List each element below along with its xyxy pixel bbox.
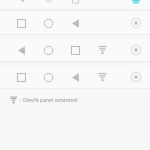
other: Not selected	[130, 71, 142, 83]
other: Recent apps	[69, 44, 82, 57]
other: Not selected	[130, 44, 142, 56]
button[interactable]: Recent apps	[0, 12, 150, 34]
other: Recent apps	[15, 71, 28, 84]
button[interactable]	[0, 0, 150, 9]
other: Back	[69, 71, 82, 84]
other: Back	[69, 17, 82, 30]
other: Home	[42, 17, 55, 30]
other: Home	[42, 44, 55, 57]
other: Not selected	[130, 17, 142, 29]
other: Open notification panel	[96, 44, 109, 57]
other: Home	[42, 71, 55, 84]
other: Recent apps	[15, 17, 28, 30]
staticText: : Otevřít panel oznámení	[20, 97, 78, 104]
button[interactable]: Back	[0, 39, 150, 61]
other: Open notification panel	[96, 71, 109, 84]
other: Back	[15, 44, 28, 57]
button[interactable]: Recent apps	[0, 66, 150, 88]
